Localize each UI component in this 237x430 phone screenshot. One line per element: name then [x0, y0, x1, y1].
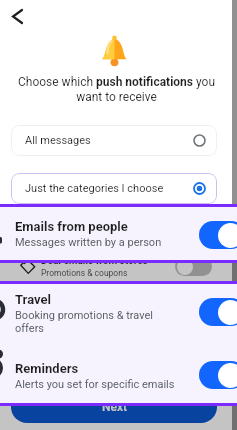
button[interactable]: Travel	[0, 284, 237, 344]
staticText: Messages written by a person	[41, 225, 154, 235]
button[interactable]: Reminders	[0, 334, 232, 370]
button[interactable]: Emails from people	[0, 205, 232, 241]
button[interactable]: Next	[11, 391, 217, 423]
button[interactable]: Travel	[0, 291, 232, 327]
staticText: Emails from people	[15, 219, 128, 234]
staticText: Next	[102, 400, 127, 414]
staticText: Travel	[15, 292, 51, 307]
button[interactable]: Reminders	[0, 344, 237, 403]
staticText: Alerts you set for specific emails	[15, 378, 175, 391]
staticText: Travel	[41, 293, 69, 305]
staticText: Just the categories I choose	[25, 182, 164, 195]
staticText: Alerts you set for specific emails	[41, 349, 162, 369]
button[interactable]: All messages	[11, 125, 217, 156]
staticText: Promotions & coupons	[41, 268, 128, 278]
staticText: Booking promotions & travel offers	[41, 306, 162, 326]
staticText: Booking promotions & travel	[15, 309, 153, 322]
button[interactable]: Emails from people	[0, 207, 237, 260]
button[interactable]: Just the categories I choose	[11, 173, 217, 204]
staticText: All messages	[25, 134, 91, 147]
staticText: Deal emails from stores	[41, 255, 148, 267]
button[interactable]: Deal emails from stores	[0, 248, 232, 284]
staticText: offers	[15, 322, 45, 335]
staticText: Choose which push notifications you want…	[14, 75, 219, 104]
staticText: Reminders	[15, 361, 79, 376]
staticText: Messages written by a person	[15, 236, 162, 249]
staticText: Emails from people	[41, 212, 128, 224]
button[interactable]: Back	[4, 3, 30, 29]
